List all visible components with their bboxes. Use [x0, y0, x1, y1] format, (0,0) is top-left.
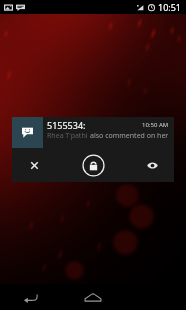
button[interactable]: Show content	[141, 154, 163, 176]
staticText: 5155534:	[47, 119, 142, 131]
button[interactable]: Home	[62, 284, 124, 310]
staticText: 10:51	[158, 1, 182, 13]
button[interactable]: Lock	[79, 151, 107, 179]
button[interactable]: 5155534:	[12, 117, 174, 182]
staticText: 10:50 AM	[142, 121, 169, 129]
staticText: also commented on her p.	[90, 131, 174, 141]
staticText: Rhea T'pathi	[47, 131, 90, 141]
button[interactable]: Dismiss notification	[23, 154, 45, 176]
button[interactable]: Back	[0, 284, 62, 310]
